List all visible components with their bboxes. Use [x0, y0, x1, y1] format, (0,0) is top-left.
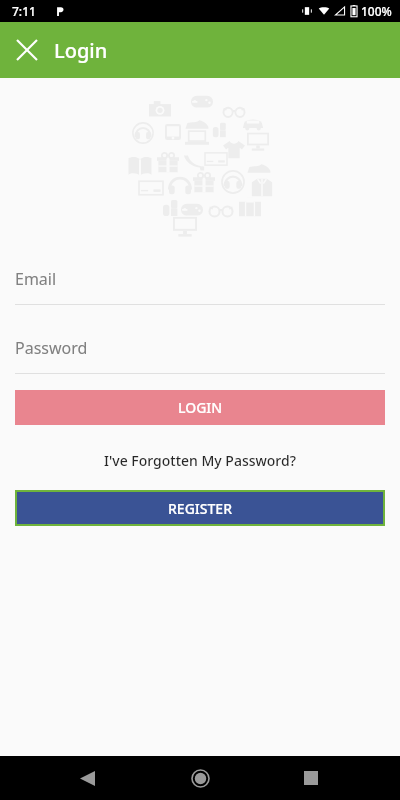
button[interactable]: REGISTER	[17, 492, 383, 524]
staticText: Password	[15, 337, 88, 359]
button[interactable]: Home	[191, 769, 210, 788]
button[interactable]: Close	[6, 29, 48, 71]
staticText: I've Forgotten My Password?	[104, 451, 296, 470]
staticText: Login	[54, 37, 108, 64]
staticText: REGISTER	[168, 499, 232, 518]
staticText: 7:11	[12, 3, 36, 19]
button[interactable]: LOGIN	[15, 390, 385, 425]
button[interactable]: I've Forgotten My Password?	[0, 447, 400, 474]
button[interactable]: Back	[80, 771, 95, 786]
button[interactable]: Password	[15, 337, 385, 374]
staticText: Email	[15, 268, 57, 290]
staticText: LOGIN	[178, 398, 223, 417]
button[interactable]: Email	[15, 268, 385, 305]
staticText: 100%	[361, 3, 392, 19]
